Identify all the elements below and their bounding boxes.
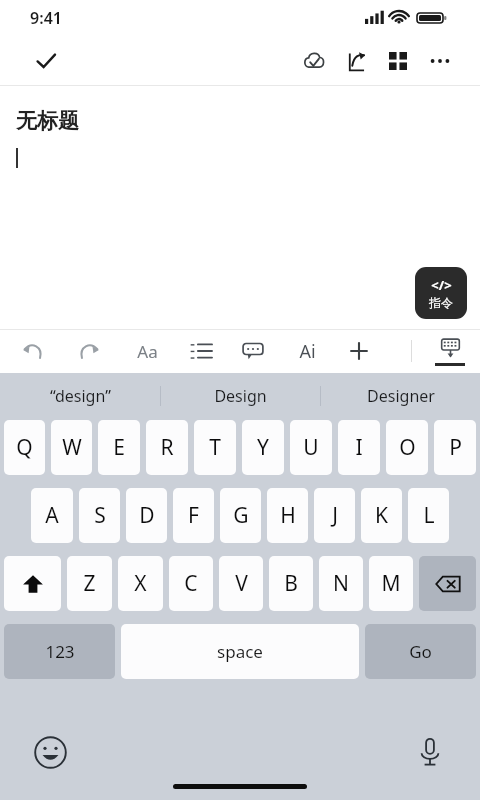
button[interactable]: O [386,420,428,475]
button[interactable]: Share [336,41,376,81]
button[interactable]: L [408,488,449,543]
button[interactable]: Emoji [28,730,72,774]
staticText: space [217,640,263,663]
staticText: M [381,569,401,598]
button[interactable]: Cloud synced [294,41,334,81]
staticText: A [45,501,59,530]
staticText: 9:41 [30,7,62,29]
staticText: L [423,501,435,530]
button[interactable]: </> [415,267,467,319]
button[interactable]: S [79,488,120,543]
button[interactable]: Comment [236,334,270,368]
staticText: T [209,433,221,462]
button[interactable]: E [98,420,140,475]
staticText: 123 [45,640,75,663]
button[interactable]: C [169,556,213,611]
button[interactable]: D [126,488,167,543]
button[interactable]: Design [161,373,320,418]
button[interactable]: N [319,556,363,611]
button[interactable]: Ai [288,332,326,370]
staticText: “design” [50,385,111,407]
button[interactable]: P [434,420,476,475]
button[interactable]: G [220,488,261,543]
staticText: N [333,569,349,598]
staticText: V [235,569,248,598]
button[interactable]: H [267,488,308,543]
button[interactable]: J [314,488,355,543]
button[interactable]: “design” [0,373,160,418]
staticText: </> [431,276,452,294]
button[interactable]: W [51,420,92,475]
button[interactable]: I [338,420,380,475]
staticText: D [139,501,155,530]
button[interactable]: Undo [16,334,50,368]
button[interactable]: V [219,556,263,611]
staticText: 指令 [429,295,453,310]
button[interactable]: Redo [72,334,106,368]
button[interactable]: Done [28,43,64,79]
staticText: K [375,501,388,530]
button[interactable]: space [121,624,359,679]
staticText: Go [409,640,432,663]
staticText: S [94,501,106,530]
button[interactable]: Backspace [419,556,476,611]
staticText: 无标题 [16,108,79,134]
staticText: P [449,433,462,462]
button[interactable]: 123 [4,624,115,679]
button[interactable]: K [361,488,402,543]
button[interactable]: Hide keyboard [426,329,474,373]
staticText: Z [83,569,96,598]
staticText: Q [16,433,33,462]
button[interactable]: Y [242,420,284,475]
staticText: W [62,433,82,462]
button[interactable]: Aa [128,332,166,370]
button[interactable]: F [173,488,214,543]
staticText: J [332,501,338,530]
staticText: C [184,569,198,598]
button[interactable]: Numbered list [184,334,218,368]
button[interactable]: T [194,420,236,475]
button[interactable]: Z [67,556,112,611]
staticText: Ai [299,339,316,364]
staticText: I [355,433,363,462]
staticText: X [134,569,147,598]
button[interactable]: M [369,556,413,611]
button[interactable]: Go [365,624,476,679]
staticText: O [399,433,416,462]
button[interactable]: A [31,488,73,543]
button[interactable]: Q [4,420,45,475]
button[interactable]: Voice input [408,730,452,774]
staticText: G [233,501,249,530]
button[interactable]: R [146,420,188,475]
staticText: Designer [367,385,435,407]
button[interactable]: U [290,420,332,475]
button[interactable]: More options [420,41,460,81]
staticText: B [284,569,298,598]
staticText: U [303,433,319,462]
button[interactable]: Insert [342,334,376,368]
button[interactable]: B [269,556,313,611]
staticText: Y [257,433,269,462]
staticText: R [160,433,174,462]
staticText: E [113,433,125,462]
button[interactable]: Designer [321,373,480,418]
button[interactable]: Shift [4,556,61,611]
button[interactable]: X [118,556,163,611]
staticText: Aa [137,340,158,363]
button[interactable]: Grid view [378,41,418,81]
staticText: H [280,501,296,530]
staticText: F [188,501,199,530]
staticText: Design [214,385,267,407]
